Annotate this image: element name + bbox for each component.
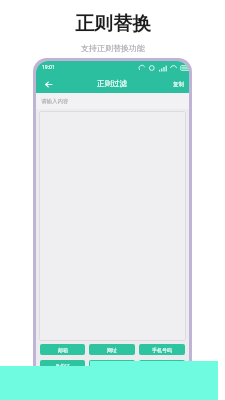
button[interactable]: 网址 [89, 344, 135, 355]
button[interactable]: 数字 [139, 360, 185, 371]
button[interactable]: 邮箱 [40, 344, 85, 355]
staticText: 邮箱 [58, 347, 68, 353]
staticText: 支持正则替换功能 [81, 43, 145, 53]
staticText: 身份证 [55, 363, 70, 369]
button[interactable]: 手机号码 [139, 344, 185, 355]
staticText: 复制 [173, 81, 184, 88]
button[interactable]: 日期 [89, 360, 135, 371]
staticText: 网址 [107, 347, 117, 353]
staticText: 正则过滤 [97, 79, 127, 88]
staticText: 手机号码 [152, 347, 172, 353]
button[interactable]: 身份证 [40, 360, 85, 371]
staticText: 19:01 [42, 64, 55, 71]
staticText: 正则替换 [75, 12, 151, 36]
button[interactable]: 请输入内容 [36, 93, 189, 109]
button[interactable]: 复制 [168, 77, 184, 91]
staticText: 请输入内容 [41, 98, 69, 105]
button[interactable]: 返回 [41, 77, 55, 91]
